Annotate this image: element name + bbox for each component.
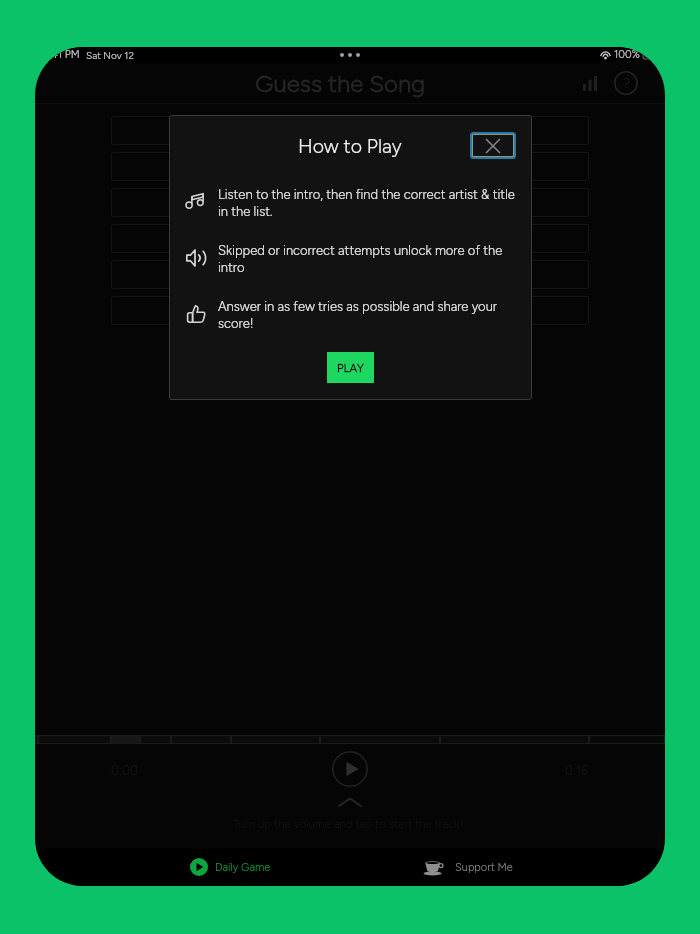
staticText: 100% — [614, 48, 640, 61]
staticText: Answer in as few tries as possible and s… — [218, 299, 518, 331]
button[interactable]: Daily Game — [190, 848, 285, 886]
button[interactable]: Close — [472, 134, 514, 157]
staticText: 0:16 — [565, 763, 589, 778]
staticText: Daily Game — [215, 861, 271, 874]
button[interactable]: PLAY — [327, 352, 374, 383]
button[interactable] — [111, 224, 589, 253]
button[interactable] — [111, 116, 589, 145]
staticText: 0:00 — [111, 763, 138, 778]
staticText: PLAY — [337, 361, 364, 375]
staticText: Sat Nov 12 — [86, 49, 134, 61]
button[interactable]: Play track — [332, 751, 368, 787]
button[interactable] — [111, 188, 589, 217]
button[interactable]: How to play — [610, 67, 642, 99]
staticText: Support Me — [455, 861, 513, 874]
other: Show more — [338, 797, 362, 807]
staticText: Turn up the volume and tap to start the … — [233, 817, 464, 831]
staticText: Guess the Song — [255, 69, 426, 98]
button[interactable]: Statistics — [574, 67, 606, 99]
button[interactable]: Support Me — [423, 848, 526, 886]
staticText: How to Play — [298, 134, 402, 157]
button[interactable] — [111, 260, 589, 289]
button[interactable] — [111, 152, 589, 181]
staticText: Skipped or incorrect attempts unlock mor… — [218, 243, 518, 275]
staticText: Listen to the intro, then find the corre… — [218, 187, 518, 219]
staticText: ? — [623, 75, 630, 92]
button[interactable] — [111, 296, 589, 325]
staticText: 9:41 PM — [43, 48, 80, 61]
